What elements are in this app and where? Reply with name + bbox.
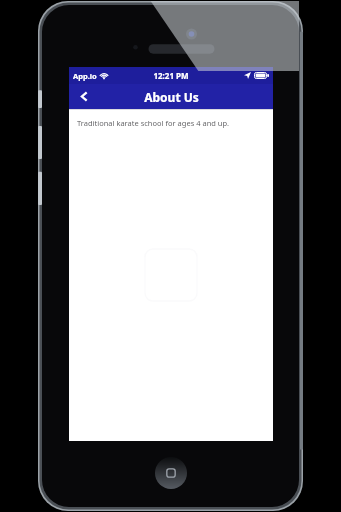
button[interactable]: Back xyxy=(69,84,99,109)
staticText: Traditional karate school for ages 4 and… xyxy=(77,118,230,128)
staticText: 12:21 PM xyxy=(153,70,189,81)
staticText: About Us xyxy=(144,89,199,105)
staticText: App.io xyxy=(73,71,97,81)
button[interactable]: Home xyxy=(155,457,187,489)
